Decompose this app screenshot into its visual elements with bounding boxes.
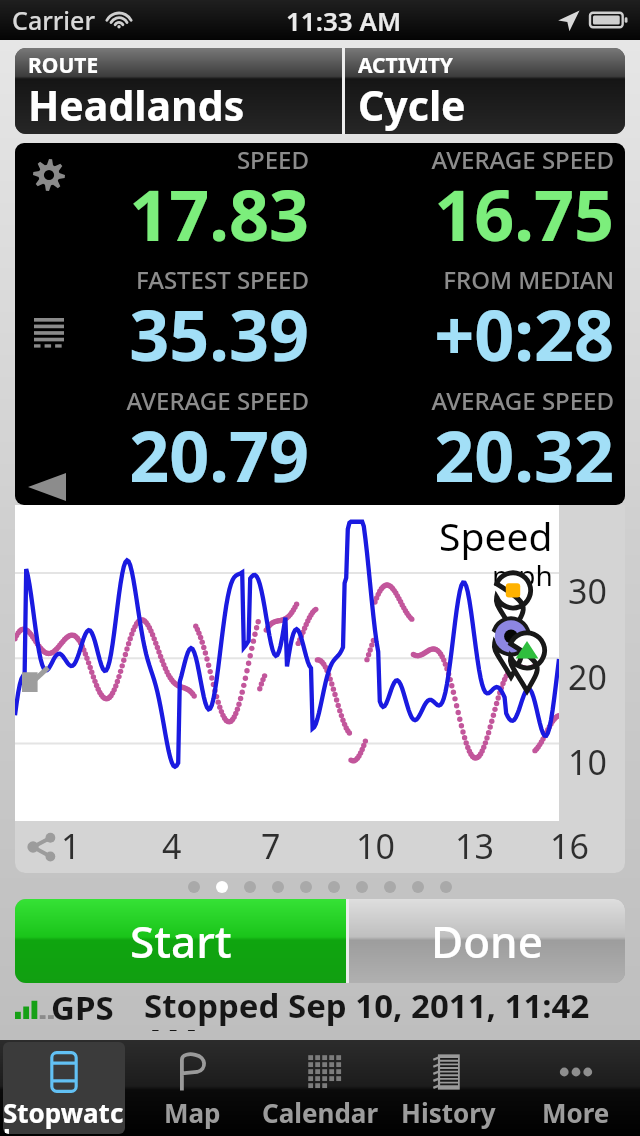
button[interactable]: ACTIVITY [345,48,625,134]
button[interactable]: Data fields [25,308,73,356]
button[interactable]: More [515,1042,637,1134]
staticText: 20.32 [434,407,614,495]
staticText: 35.39 [129,286,309,374]
button[interactable]: Share [21,826,63,868]
staticText: ACTIVITY [358,51,453,80]
staticText: Start [130,911,232,971]
staticText: ROUTE [28,51,99,80]
staticText: AVERAGE SPEED [431,384,614,417]
button[interactable]: History [387,1042,509,1134]
staticText: Map [164,1095,221,1130]
staticText: Done [431,911,543,971]
button[interactable]: FASTEST SPEED [15,263,320,384]
staticText: 11:33 AM [286,3,402,38]
staticText: Calendar [262,1095,379,1130]
staticText: 7 [261,823,281,869]
button[interactable]: Stopwatch [3,1042,125,1134]
staticText: FASTEST SPEED [135,263,309,296]
button[interactable]: Map [131,1042,253,1134]
staticText: Speed [439,509,553,562]
staticText: mph [492,556,553,594]
staticText: AVERAGE SPEED [431,143,614,176]
staticText: 10 [356,823,395,869]
button[interactable]: Expand chart [17,661,53,697]
staticText: 30 [568,568,607,614]
staticText: 16 [550,823,589,869]
staticText: SPEED [236,143,309,176]
staticText: Stopped Sep 10, 2011, 11:42 AM [144,983,625,1031]
button[interactable]: FROM MEDIAN [320,263,625,384]
staticText: GPS [51,985,114,1030]
staticText: 1 [61,823,81,869]
staticText: 16.75 [434,166,614,253]
button[interactable]: Done [349,899,625,983]
staticText: Cycle [358,77,466,131]
staticText: 13 [455,823,494,869]
staticText: FROM MEDIAN [443,263,614,296]
button[interactable]: SPEED [15,143,320,263]
staticText: AVERAGE SPEED [126,384,309,417]
staticText: Carrier [12,3,96,37]
button[interactable]: Speed [15,505,559,821]
button[interactable]: Start [15,899,346,983]
staticText: 10 [568,739,607,785]
staticText: History [401,1095,496,1130]
staticText: 20 [568,654,607,700]
button[interactable]: AVERAGE SPEED [320,384,625,505]
button[interactable]: ROUTE [15,48,342,134]
button[interactable]: Settings [25,151,73,199]
staticText: More [542,1095,610,1130]
button[interactable]: Calendar [259,1042,381,1134]
staticText: Stopwatch [3,1095,125,1134]
staticText: Headlands [28,77,245,131]
staticText: 20.79 [129,407,309,495]
button[interactable]: Previous page [21,469,73,505]
staticText: +0:28 [434,286,614,374]
button[interactable]: AVERAGE SPEED [15,384,320,505]
button[interactable]: AVERAGE SPEED [320,143,625,263]
staticText: 17.83 [129,166,309,253]
staticText: 4 [162,823,182,869]
